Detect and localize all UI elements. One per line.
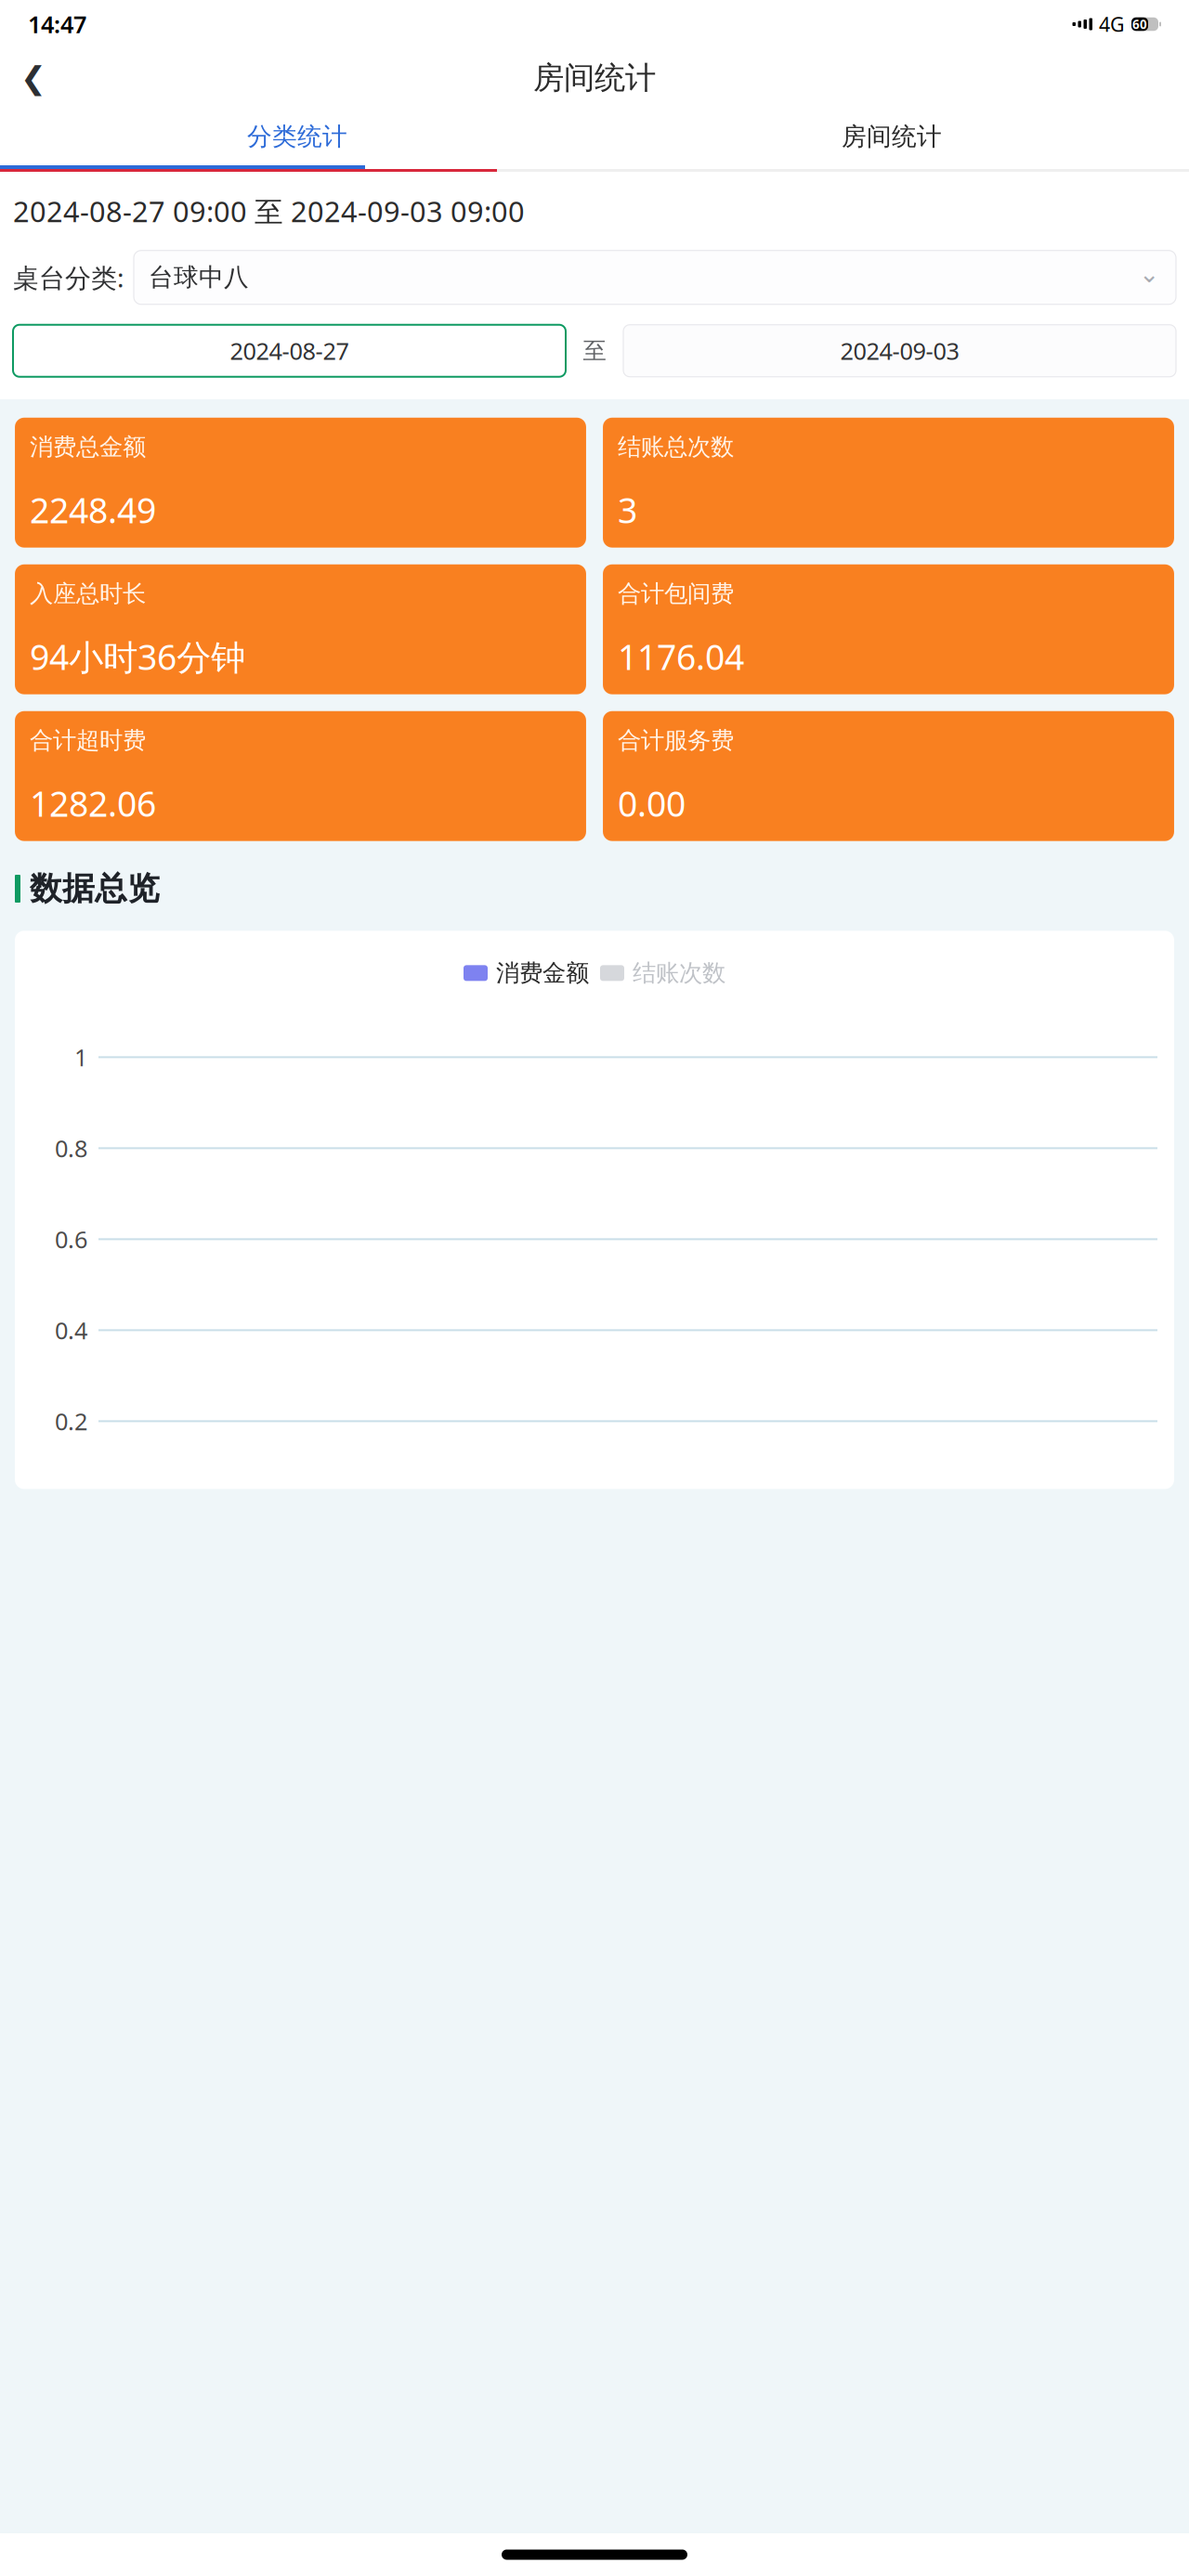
staticText: 2248.49 — [30, 487, 156, 533]
staticText: 0.6 — [55, 1224, 87, 1255]
staticText: 桌台分类: — [13, 260, 124, 295]
staticText: 结账次数 — [633, 959, 725, 987]
staticText: 0.2 — [55, 1406, 87, 1437]
button[interactable]: 台球中八 — [134, 250, 1176, 304]
button[interactable]: 消费总金额 — [15, 418, 586, 548]
staticText: 60 — [1132, 16, 1147, 32]
staticText: 入座总时长 — [30, 579, 146, 608]
staticText: 2024-08-27 09:00 至 2024-09-03 09:00 — [13, 192, 525, 230]
staticText: ❮ — [20, 60, 46, 96]
button[interactable]: 分类统计 — [0, 108, 594, 165]
button[interactable]: 合计超时费 — [15, 711, 586, 841]
staticText: 消费总金额 — [30, 432, 146, 461]
staticText: 1176.04 — [618, 633, 744, 679]
button[interactable]: 结账总次数 — [603, 418, 1174, 548]
button[interactable]: 2024-09-03 — [623, 325, 1176, 377]
button[interactable]: 合计服务费 — [603, 711, 1174, 841]
staticText: 台球中八 — [149, 262, 249, 293]
staticText: 0.00 — [618, 780, 686, 826]
staticText: 至 — [583, 336, 606, 365]
staticText: 合计包间费 — [618, 579, 734, 608]
staticText: 分类统计 — [247, 121, 347, 152]
staticText: 1 — [74, 1042, 87, 1073]
button[interactable]: Back — [11, 56, 56, 100]
staticText: ⌄ — [1139, 260, 1159, 288]
staticText: 94小时36分钟 — [30, 633, 245, 679]
staticText: 1282.06 — [30, 780, 156, 826]
button[interactable]: 房间统计 — [594, 108, 1189, 165]
staticText: 结账总次数 — [618, 432, 734, 461]
staticText: 3 — [618, 487, 637, 533]
staticText: 合计服务费 — [618, 726, 734, 755]
staticText: 合计超时费 — [30, 726, 146, 755]
staticText: 2024-09-03 — [840, 335, 959, 366]
staticText: 数据总览 — [30, 869, 160, 908]
button[interactable]: 合计包间费 — [603, 564, 1174, 694]
staticText: 消费金额 — [496, 959, 589, 987]
staticText: 0.8 — [55, 1133, 87, 1164]
staticText: 14:47 — [28, 9, 86, 40]
staticText: 0.4 — [55, 1315, 87, 1346]
staticText: 4G — [1099, 11, 1125, 37]
staticText: 房间统计 — [842, 121, 942, 152]
button[interactable]: 2024-08-27 — [13, 325, 566, 377]
button[interactable]: 入座总时长 — [15, 564, 586, 694]
staticText: 房间统计 — [533, 59, 656, 97]
staticText: 2024-08-27 — [230, 335, 349, 366]
